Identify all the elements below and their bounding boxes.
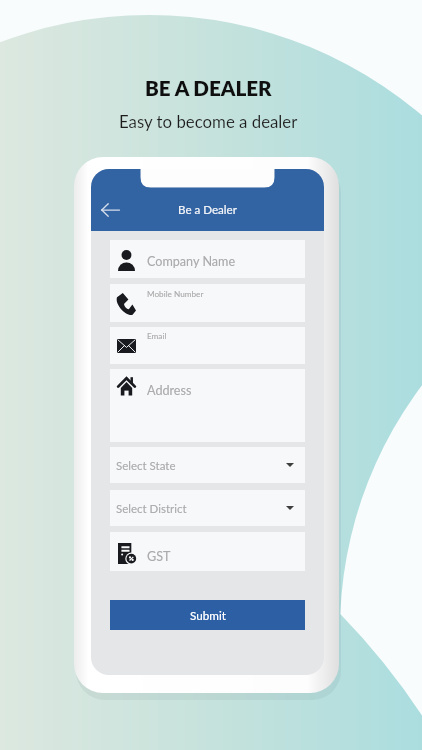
button[interactable]: Back bbox=[95, 195, 125, 225]
staticText: Address bbox=[147, 383, 192, 398]
staticText: Be a Dealer bbox=[178, 203, 237, 217]
staticText: GST bbox=[147, 549, 171, 564]
staticText: Select State bbox=[116, 459, 176, 473]
staticText: Email bbox=[147, 331, 167, 341]
button[interactable]: Submit bbox=[110, 600, 305, 630]
button[interactable]: Company Name bbox=[110, 240, 305, 278]
button[interactable]: Address bbox=[110, 369, 305, 442]
button[interactable]: Select District bbox=[110, 490, 305, 526]
staticText: Easy to become a dealer bbox=[119, 111, 298, 131]
staticText: Mobile Number bbox=[147, 289, 204, 299]
button[interactable]: GST bbox=[110, 532, 305, 571]
staticText: Company Name bbox=[147, 254, 236, 269]
button[interactable]: Select State bbox=[110, 447, 305, 483]
button[interactable]: Mobile Number bbox=[110, 284, 305, 322]
staticText: Submit bbox=[190, 608, 226, 622]
button[interactable]: Email bbox=[110, 327, 305, 364]
staticText: BE A DEALER bbox=[145, 76, 272, 101]
staticText: Select District bbox=[116, 502, 187, 516]
